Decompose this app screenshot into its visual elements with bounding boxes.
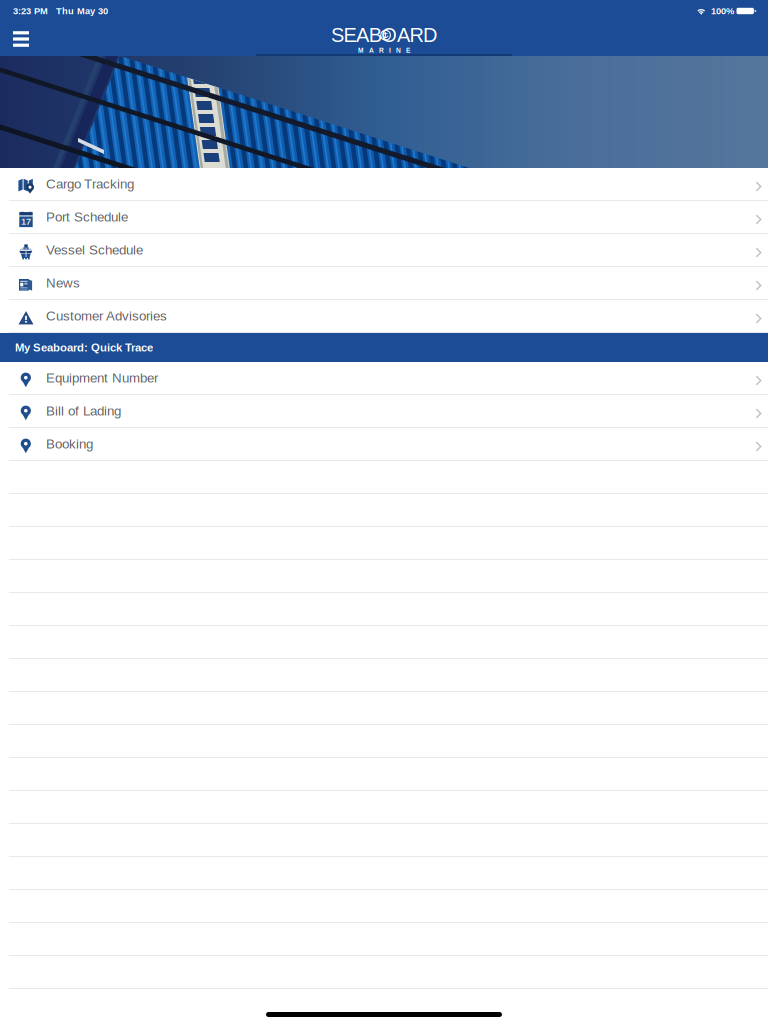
button[interactable]: Booking: [0, 428, 768, 461]
staticText: 100%: [711, 6, 734, 16]
staticText: Port Schedule: [46, 210, 128, 224]
button[interactable]: Vessel Schedule: [0, 234, 768, 267]
staticText: 3:23 PM: [13, 6, 48, 16]
button[interactable]: Customer Advisories: [0, 300, 768, 333]
staticText: Thu May 30: [56, 6, 108, 16]
button[interactable]: Equipment Number: [0, 362, 768, 395]
staticText: SEABOARD: [331, 24, 437, 46]
button[interactable]: 17: [0, 201, 768, 234]
staticText: Bill of Lading: [46, 404, 121, 418]
staticText: M A R I N E: [358, 47, 410, 54]
staticText: 17: [21, 216, 31, 227]
button[interactable]: News: [0, 267, 768, 300]
button[interactable]: Bill of Lading: [0, 395, 768, 428]
button[interactable]: Cargo Tracking: [0, 168, 768, 201]
staticText: Vessel Schedule: [46, 243, 143, 257]
button[interactable]: Menu: [0, 22, 42, 56]
staticText: Booking: [46, 437, 93, 451]
staticText: Equipment Number: [46, 371, 158, 385]
staticText: News: [46, 276, 80, 290]
staticText: My Seaboard: Quick Trace: [15, 341, 153, 354]
staticText: Cargo Tracking: [46, 177, 134, 191]
staticText: Customer Advisories: [46, 309, 167, 323]
button[interactable]: Seaboard Marine home: [304, 22, 464, 56]
